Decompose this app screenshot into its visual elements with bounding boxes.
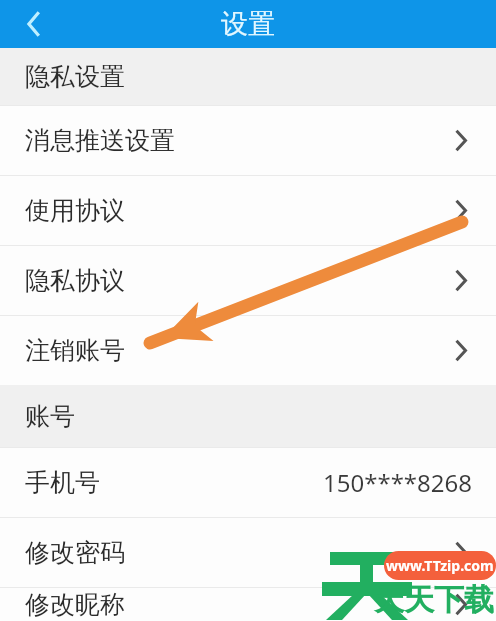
staticText: 天天下载 — [374, 581, 494, 619]
staticText: 150****8268 — [323, 466, 472, 499]
button[interactable]: 修改密码 — [0, 518, 496, 587]
staticText: 使用协议 — [25, 195, 125, 226]
staticText: 设置 — [221, 7, 275, 41]
staticText: 隐私设置 — [25, 61, 125, 92]
staticText: www.TTzip.com — [386, 556, 494, 575]
staticText: 手机号 — [25, 467, 100, 498]
staticText: 消息推送设置 — [25, 125, 175, 156]
staticText: 修改密码 — [25, 537, 125, 568]
staticText: 修改昵称 — [25, 589, 125, 620]
staticText: 账号 — [25, 401, 75, 432]
staticText: 注销账号 — [25, 335, 125, 366]
button[interactable]: Back — [14, 4, 54, 44]
staticText: 隐私协议 — [25, 265, 125, 296]
button[interactable]: 使用协议 — [0, 176, 496, 245]
button[interactable]: 注销账号 — [0, 316, 496, 385]
button[interactable]: 隐私协议 — [0, 246, 496, 315]
button[interactable]: 消息推送设置 — [0, 106, 496, 175]
button[interactable]: 手机号 — [0, 448, 496, 517]
button[interactable]: 修改昵称 — [0, 588, 496, 621]
